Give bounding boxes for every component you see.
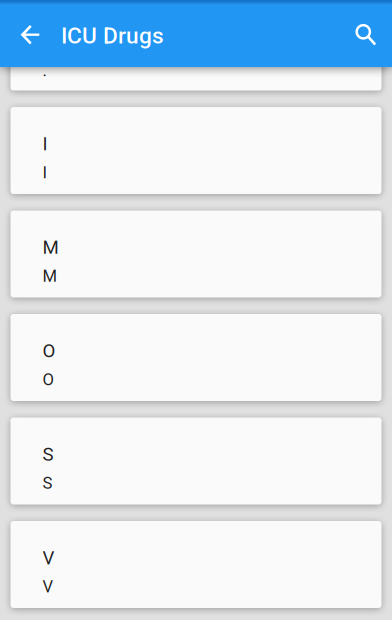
button[interactable]: Back xyxy=(8,11,52,59)
staticText: V xyxy=(42,577,53,596)
staticText: I xyxy=(42,163,47,182)
staticText: M xyxy=(42,266,57,286)
button[interactable]: V xyxy=(10,521,381,608)
button[interactable]: M xyxy=(10,210,381,297)
staticText: I xyxy=(42,133,47,155)
staticText: O xyxy=(42,340,55,362)
staticText: O xyxy=(42,370,53,389)
staticText: . xyxy=(42,61,46,80)
button[interactable]: O xyxy=(10,314,381,401)
staticText: ICU Drugs xyxy=(61,22,164,49)
button[interactable]: I xyxy=(10,107,381,194)
staticText: S xyxy=(42,473,52,493)
button[interactable]: Search xyxy=(344,11,388,59)
staticText: V xyxy=(42,547,54,569)
staticText: S xyxy=(42,443,53,465)
button[interactable]: A xyxy=(10,3,381,90)
staticText: M xyxy=(42,236,58,258)
button[interactable]: S xyxy=(10,417,381,504)
